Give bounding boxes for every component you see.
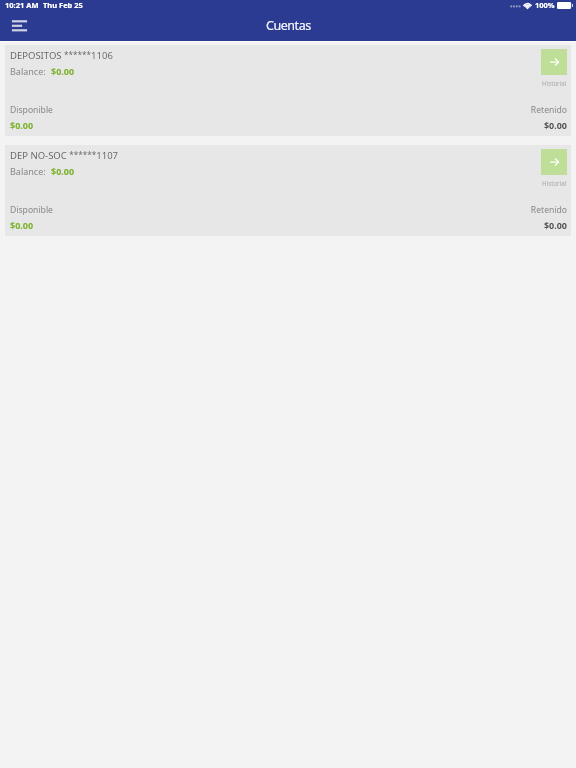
staticText: $0.00 [543,219,567,231]
staticText: Retenido [530,204,567,216]
staticText: Disponible [10,104,53,116]
staticText: $0.00 [10,219,34,231]
staticText: Historial [542,79,567,87]
staticText: $0.00 [51,65,75,77]
button[interactable]: DEP NO-SOC ******1107 [5,145,571,236]
staticText: $0.00 [543,119,567,131]
staticText: 100% [535,0,555,10]
staticText: Balance: [10,165,46,177]
staticText: DEPOSITOS ******1106 [10,49,113,62]
staticText: $0.00 [10,119,34,131]
staticText: Balance: [10,65,46,77]
staticText: Disponible [10,204,53,216]
staticText: Retenido [530,104,567,116]
button[interactable]: DEPOSITOS ******1106 [5,45,571,136]
button[interactable]: Historial [541,149,567,175]
staticText: 10:21 AM [5,0,39,10]
staticText: $0.00 [51,165,75,177]
staticText: DEP NO-SOC ******1107 [10,149,119,162]
button[interactable]: Historial [541,49,567,75]
staticText: Thu Feb 25 [43,0,83,10]
button[interactable]: Menu [0,14,38,41]
staticText: Cuentas [266,17,311,34]
staticText: Historial [542,179,567,187]
